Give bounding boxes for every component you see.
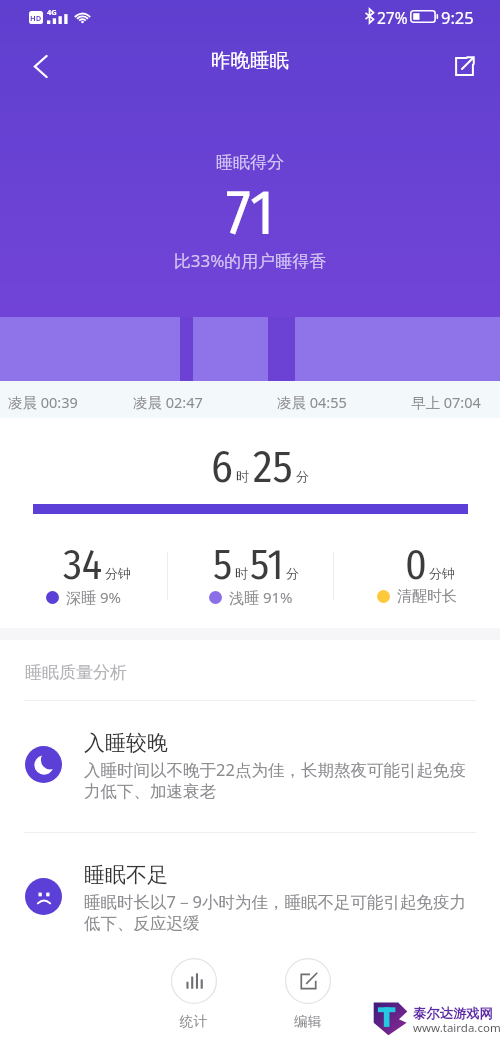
staticText: 清醒时长 (397, 587, 457, 606)
staticText: 4G (47, 7, 57, 17)
button[interactable]: Back (19, 44, 63, 88)
staticText: 睡眠不足 (84, 862, 168, 888)
button[interactable]: 5 (167, 540, 334, 610)
staticText: 早上 07:04 (411, 392, 481, 412)
staticText: 分 (296, 468, 309, 484)
staticText: 编辑 (294, 1013, 321, 1030)
button[interactable]: 入睡较晚 (0, 701, 500, 832)
staticText: 9:25 (441, 6, 474, 28)
staticText: 凌晨 00:39 (8, 392, 78, 412)
staticText: 27% (377, 7, 408, 28)
staticText: 昨晚睡眠 (0, 48, 500, 73)
staticText: 深睡 9% (66, 587, 121, 607)
staticText: 分 (286, 565, 299, 581)
button[interactable]: 0 (334, 540, 500, 610)
staticText: 时 (236, 468, 249, 484)
button[interactable]: Share (442, 44, 486, 88)
staticText: 分钟 (105, 565, 131, 581)
button[interactable]: 编辑 (270, 958, 345, 1030)
button[interactable]: 睡眠不足 (0, 833, 500, 953)
button[interactable]: 34 (0, 540, 167, 610)
staticText: 6 (211, 441, 233, 494)
staticText: HD (30, 13, 42, 23)
staticText: 比33%的用户睡得香 (0, 249, 500, 272)
staticText: 分钟 (429, 565, 455, 581)
staticText: 25 (253, 441, 293, 494)
staticText: 入睡时间以不晚于22点为佳，长期熬夜可能引起免疫 力低下、加速衰老 (84, 758, 466, 802)
staticText: 泰尔达游戏网 (413, 1005, 493, 1022)
staticText: 睡眠时长以7－9小时为佳，睡眠不足可能引起免疫力 低下、反应迟缓 (84, 890, 466, 934)
staticText: 浅睡 91% (229, 587, 293, 607)
staticText: 统计 (180, 1013, 207, 1030)
staticText: 5 (213, 540, 233, 590)
staticText: www.tairda.com (413, 1020, 500, 1036)
staticText: 时 (235, 565, 248, 581)
staticText: 凌晨 04:55 (277, 392, 347, 412)
staticText: 凌晨 02:47 (133, 392, 203, 412)
staticText: 34 (63, 540, 103, 590)
button[interactable]: 统计 (156, 958, 231, 1030)
staticText: 51 (250, 540, 284, 590)
staticText: 睡眠得分 (0, 152, 500, 173)
staticText: 71 (0, 176, 500, 250)
staticText: 0 (405, 540, 427, 590)
staticText: 入睡较晚 (84, 730, 168, 756)
staticText: 睡眠质量分析 (25, 662, 127, 683)
